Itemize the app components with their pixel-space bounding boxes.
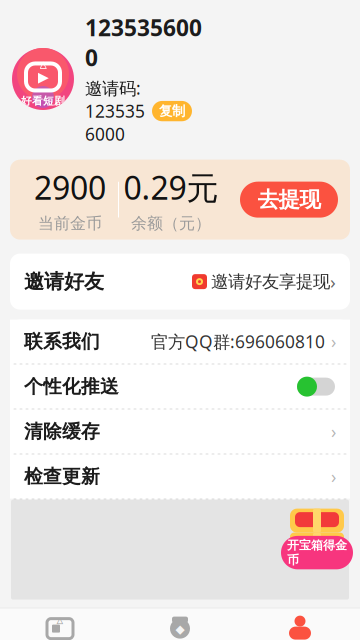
- button[interactable]: ◆: [120, 609, 240, 640]
- button[interactable]: 复制: [152, 101, 192, 121]
- button[interactable]: 邀请好友: [10, 254, 350, 310]
- button[interactable]: 头像: [12, 48, 74, 110]
- button[interactable]: 去提现: [240, 182, 338, 218]
- button[interactable]: 我的: [240, 609, 360, 640]
- staticText: 邀请好友享提现: [211, 271, 330, 292]
- staticText: 2900: [34, 166, 106, 208]
- staticText: 0.29元: [123, 166, 218, 208]
- button[interactable]: 个性化推送: [10, 365, 350, 409]
- button[interactable]: 联系我们: [10, 320, 350, 364]
- staticText: 联系我们: [24, 330, 100, 353]
- staticText: ▵: [39, 56, 46, 72]
- staticText: 好看短剧: [21, 94, 65, 107]
- staticText: 邀请码:1235356000: [85, 77, 145, 146]
- staticText: 复制: [159, 103, 185, 119]
- button[interactable]: ▵: [0, 609, 120, 640]
- staticText: 1235356000: [85, 12, 202, 73]
- staticText: ◆: [175, 622, 184, 636]
- staticText: ▶: [37, 69, 48, 85]
- staticText: 去提现: [257, 186, 320, 213]
- staticText: 个性化推送: [24, 375, 119, 398]
- staticText: 检查更新: [24, 465, 100, 488]
- button[interactable]: 开宝箱得金币: [278, 501, 356, 563]
- staticText: ›: [330, 269, 336, 294]
- staticText: 当前金币: [38, 213, 102, 233]
- staticText: 清除缓存: [24, 420, 100, 443]
- staticText: 开宝箱得金币: [287, 538, 347, 567]
- button[interactable]: 检查更新: [10, 455, 350, 499]
- button[interactable]: 清除缓存: [10, 410, 350, 454]
- staticText: 余额（元）: [131, 213, 211, 233]
- staticText: 邀请好友: [24, 269, 104, 294]
- staticText: 官方QQ群:696060810: [151, 330, 325, 353]
- staticText: ›: [331, 330, 336, 353]
- staticText: ›: [331, 420, 336, 443]
- button[interactable]: 个性化推送: [296, 376, 336, 398]
- staticText: ›: [331, 465, 336, 488]
- staticText: ▵: [56, 612, 63, 627]
